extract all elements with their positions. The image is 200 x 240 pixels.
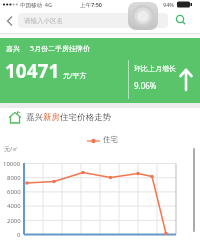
staticText: 10471 <box>5 58 60 84</box>
staticText: 5月份二手房挂牌价 <box>30 44 91 54</box>
staticText: 上午7:50 <box>80 1 102 9</box>
button[interactable]: 嘉兴 <box>0 38 200 103</box>
staticText: 6000 <box>7 188 21 196</box>
button[interactable]: 嘉兴新房住宅价格走势 <box>0 108 200 126</box>
staticText: 元/平方 <box>63 71 87 81</box>
staticText: 环比上月增长 <box>134 64 176 73</box>
button[interactable]: 请输入小区名 <box>18 13 168 28</box>
staticText: 嘉兴 <box>6 44 20 53</box>
staticText: 元/㎡ <box>4 145 19 153</box>
staticText: 94% <box>163 1 174 8</box>
staticText: 9.06% <box>134 80 157 91</box>
staticText: 住宅 <box>103 135 118 144</box>
button[interactable] <box>175 14 187 26</box>
staticText: 0 <box>17 231 21 239</box>
staticText: 中国移动 4G <box>20 1 53 9</box>
button[interactable] <box>128 2 158 30</box>
staticText: 请输入小区名 <box>24 17 63 25</box>
staticText: 8000 <box>7 174 21 182</box>
staticText: 2000 <box>7 217 21 225</box>
staticText: 嘉兴新房住宅价格走势 <box>26 112 111 123</box>
staticText: 4000 <box>7 202 21 210</box>
button[interactable] <box>6 16 14 26</box>
staticText: 10000 <box>3 160 21 168</box>
